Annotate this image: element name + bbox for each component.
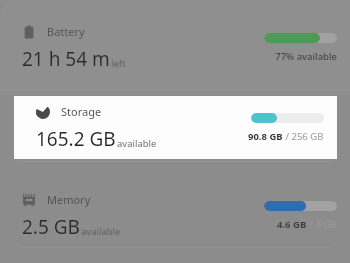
staticText: 2.5 GB: [22, 214, 80, 240]
button[interactable]: Battery: [0, 0, 350, 95]
other: Storage: [36, 105, 50, 119]
staticText: 21 h 54 m: [22, 46, 110, 72]
staticText: 77% available: [275, 50, 337, 63]
button[interactable]: Storage: [14, 96, 337, 159]
staticText: / 8 GB: [307, 218, 337, 231]
other: Memory: [22, 193, 36, 207]
other: Battery: [22, 25, 36, 39]
staticText: 4.6 GB: [277, 218, 307, 231]
staticText: Battery: [47, 24, 85, 39]
staticText: 90.8 GB: [248, 130, 283, 143]
button[interactable]: Memory: [0, 169, 350, 263]
staticText: / 256 GB: [283, 130, 324, 143]
staticText: Memory: [47, 192, 91, 207]
staticText: 165.2 GB: [36, 126, 116, 152]
staticText: available: [117, 137, 157, 150]
staticText: available: [81, 225, 121, 238]
staticText: Storage: [61, 104, 102, 119]
staticText: left: [111, 57, 126, 70]
